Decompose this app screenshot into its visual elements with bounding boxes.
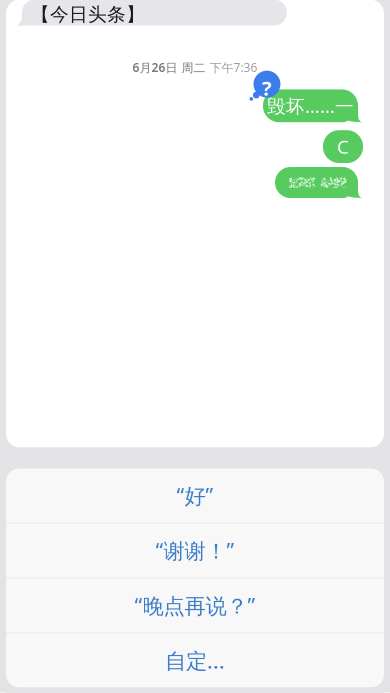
staticText: “晚点再说？”	[134, 591, 255, 620]
staticText: 【今日头条】	[31, 3, 145, 26]
button[interactable]: “谢谢！”	[6, 523, 384, 577]
staticText: “谢谢！”	[155, 536, 234, 565]
staticText: 毁坏……一	[267, 93, 354, 118]
staticText: 6月26日 周二	[132, 59, 209, 75]
staticText: 下午7:36	[209, 59, 257, 75]
button[interactable]: “晚点再说？”	[6, 578, 384, 632]
staticText: C	[337, 134, 349, 159]
staticText: 自定...	[165, 646, 225, 675]
button[interactable]: “好”	[6, 468, 384, 522]
staticText: “好”	[176, 481, 213, 510]
button[interactable]: 自定...	[6, 633, 384, 687]
staticText: ?	[262, 75, 272, 101]
